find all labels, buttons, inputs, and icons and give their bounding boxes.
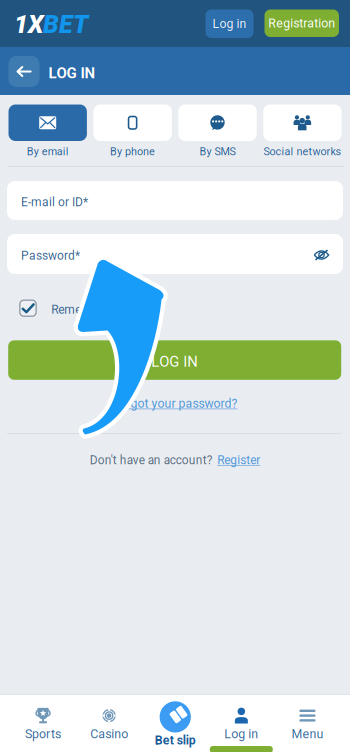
button[interactable]: Forgot your password? <box>75 394 275 412</box>
staticText: E-mail or ID* <box>21 195 88 209</box>
button[interactable]: By phone <box>93 104 172 156</box>
staticText: Don't have an account? <box>90 453 213 467</box>
staticText: Password* <box>21 249 80 263</box>
button[interactable]: Log in <box>208 695 274 752</box>
staticText: Menu <box>291 727 323 741</box>
staticText: By SMS <box>199 145 235 158</box>
staticText: By email <box>27 145 69 158</box>
button[interactable]: By email <box>8 104 87 156</box>
staticText: BET <box>43 10 88 39</box>
staticText: Sports <box>25 727 61 741</box>
button[interactable]: Registration <box>264 9 339 37</box>
staticText: Casino <box>90 727 128 741</box>
staticText: Social networks <box>263 145 341 158</box>
staticText: Register <box>217 453 260 467</box>
button[interactable]: Sports <box>10 695 76 752</box>
button[interactable]: Bet slip <box>142 695 208 752</box>
button[interactable]: Back <box>8 56 39 87</box>
button[interactable]: Register <box>217 453 260 467</box>
staticText: LOG IN <box>48 64 95 82</box>
button[interactable]: Show password <box>307 241 335 269</box>
staticText: Bet slip <box>155 733 196 747</box>
staticText: Forgot your password? <box>112 396 237 411</box>
staticText: Log in <box>212 16 246 31</box>
staticText: LOG IN <box>151 353 198 370</box>
button[interactable]: By SMS <box>178 104 257 156</box>
button[interactable]: Casino <box>76 695 142 752</box>
button[interactable]: Social networks <box>263 104 342 156</box>
button[interactable]: Log in <box>205 9 253 38</box>
button[interactable]: Remember me <box>19 297 219 319</box>
button[interactable]: LOG IN <box>8 340 341 380</box>
button[interactable]: Menu <box>274 695 340 752</box>
staticText: By phone <box>110 145 155 158</box>
staticText: Remember me <box>51 303 129 317</box>
staticText: 1X <box>14 10 43 39</box>
staticText: Registration <box>268 16 335 30</box>
staticText: Log in <box>224 727 258 741</box>
